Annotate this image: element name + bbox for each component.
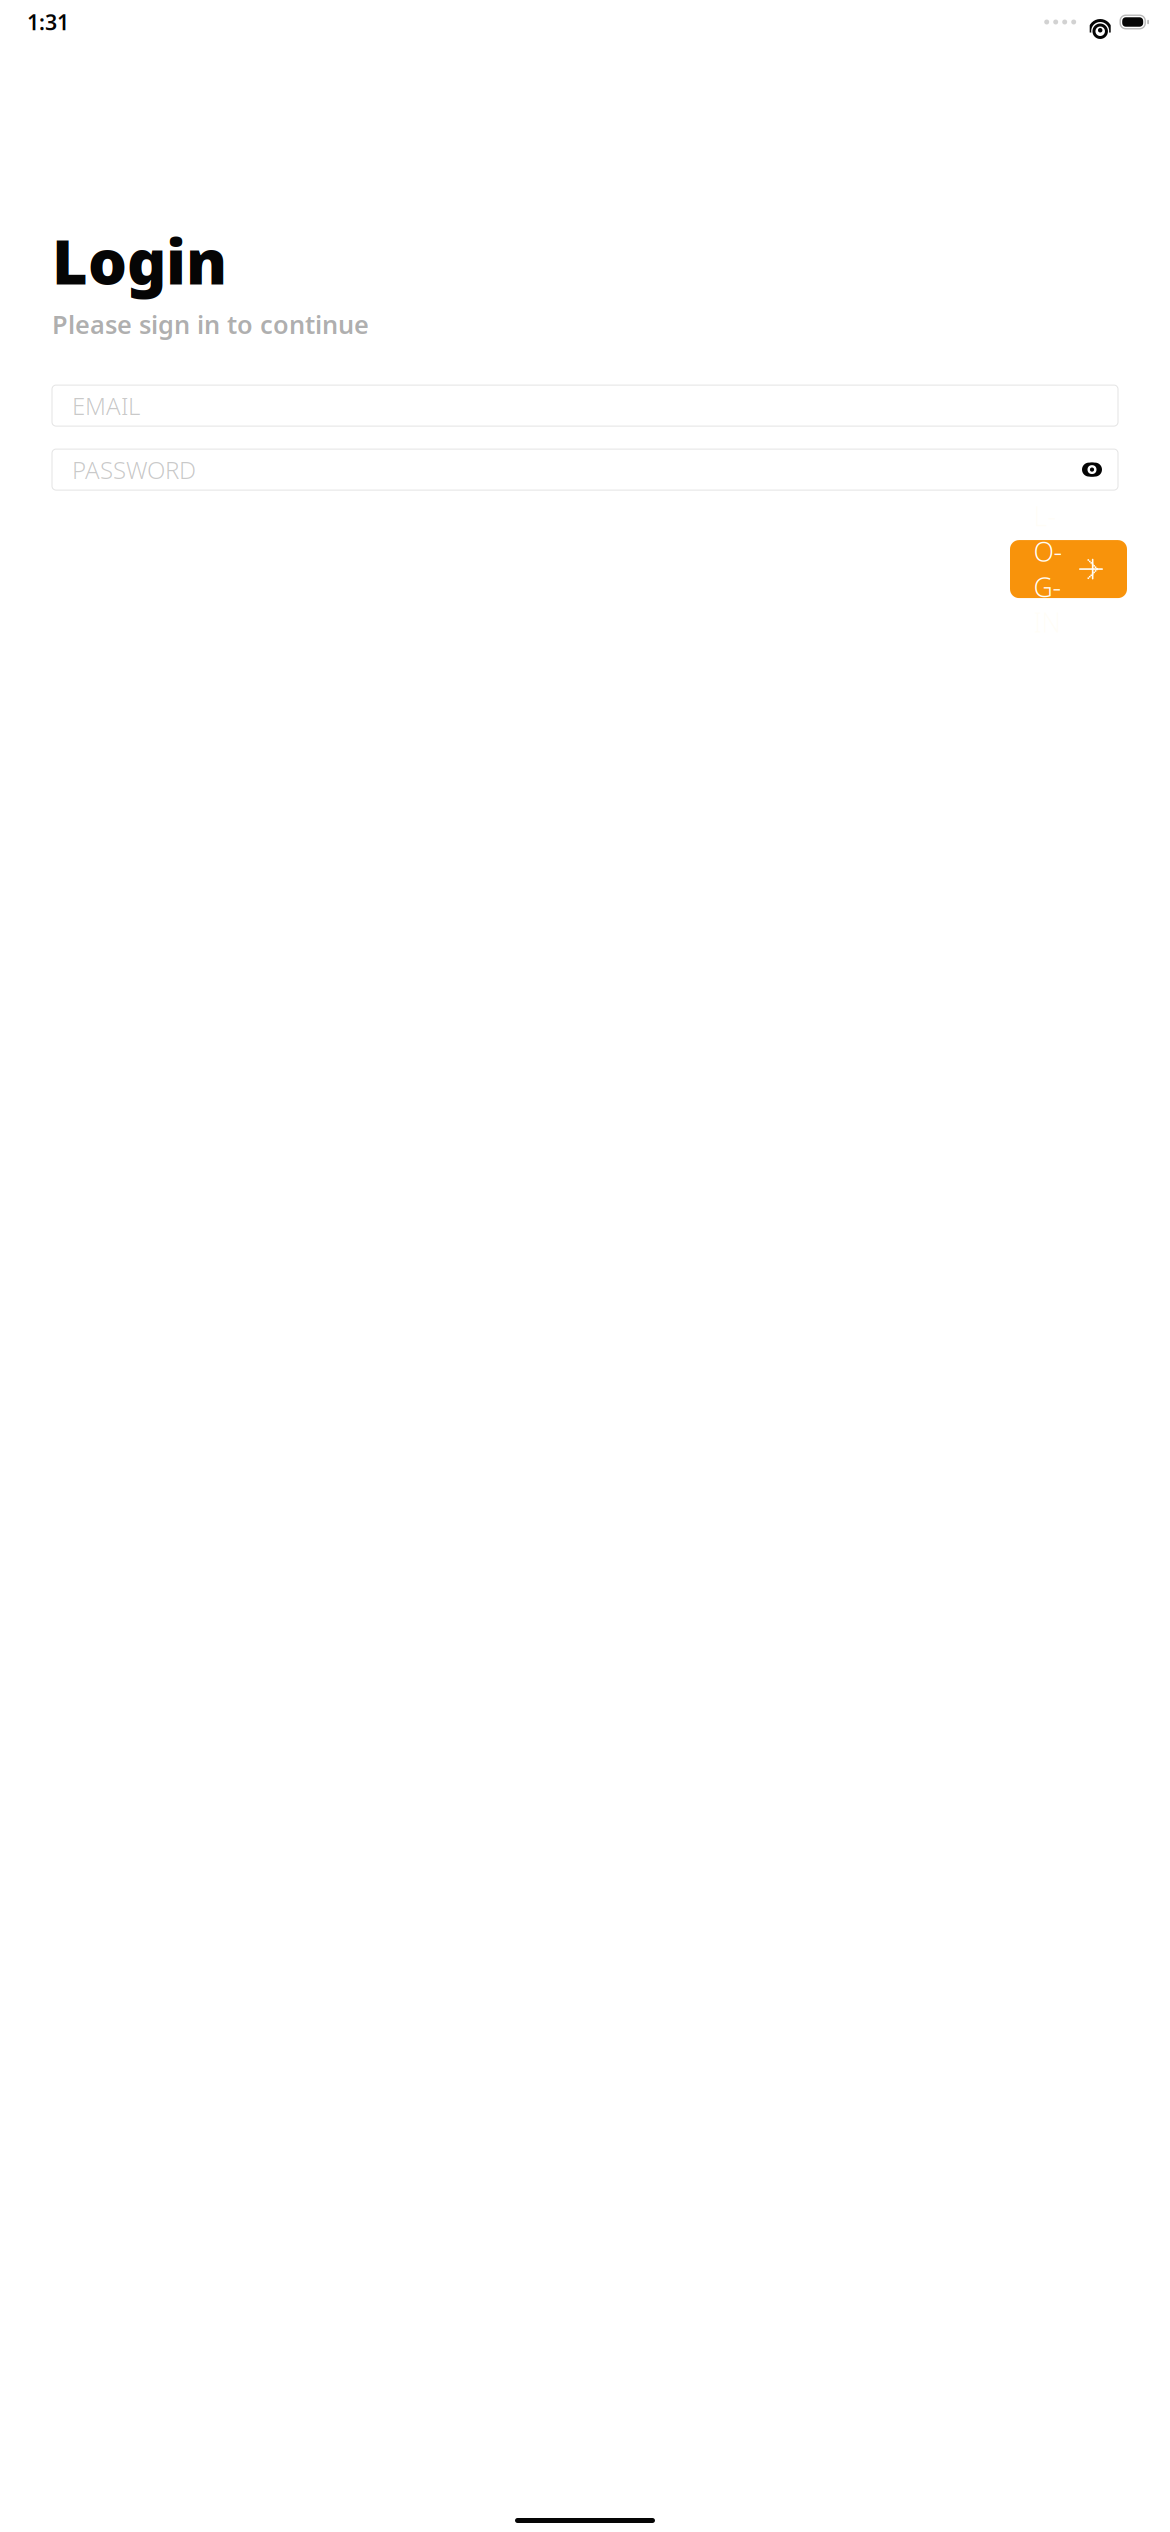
staticText: PASSWORD [72, 454, 196, 486]
staticText: EMAIL [72, 390, 140, 422]
button[interactable]: Show password [1078, 458, 1106, 482]
staticText: 1:31 [27, 8, 69, 36]
staticText: Please sign in to continue [52, 307, 369, 341]
staticText: LOGIN [1033, 498, 1062, 640]
button[interactable]: LOGIN [1010, 540, 1127, 598]
staticText: Login [52, 220, 227, 301]
